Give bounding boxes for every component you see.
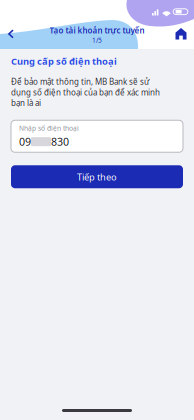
staticText: Để bảo mật thông tin, MB Bank sẽ sử [11, 76, 149, 87]
staticText: Tạo tài khoản trực tuyến [49, 25, 144, 36]
staticText: 1/5 [92, 36, 102, 44]
staticText: Nhập số điện thoại [19, 124, 79, 133]
button[interactable]: Back [0, 24, 22, 44]
staticText: 09 [19, 135, 31, 149]
staticText: dụng số điện thoại của bạn để xác minh [11, 87, 160, 98]
button[interactable]: Home [170, 24, 192, 44]
staticText: 830 [51, 135, 69, 149]
staticText: bạn là ai [11, 98, 41, 108]
button[interactable]: Tiếp theo [11, 165, 183, 188]
staticText: Tiếp theo [77, 171, 117, 183]
staticText: Cung cấp số điện thoại [11, 55, 117, 67]
